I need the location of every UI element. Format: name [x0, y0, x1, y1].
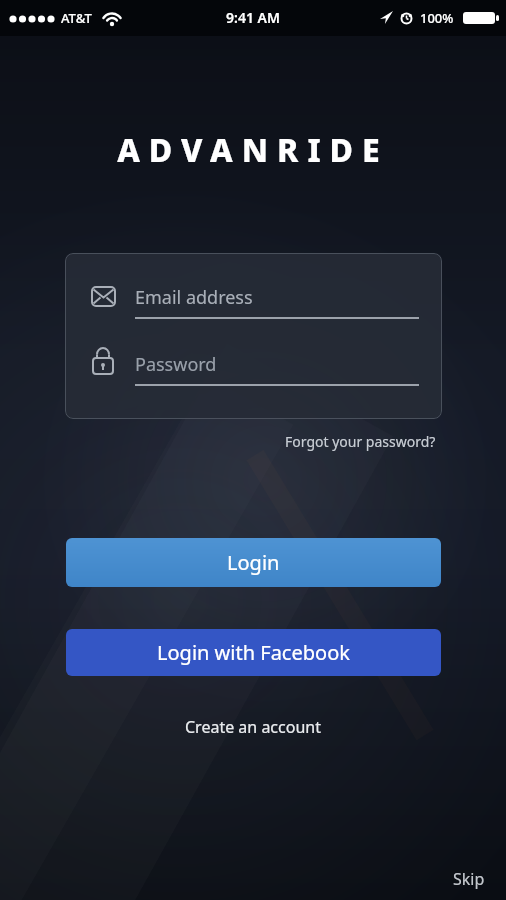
button[interactable]: Skip — [453, 868, 485, 890]
staticText: Login with Facebook — [157, 639, 350, 666]
staticText: 9:41 AM — [0, 8, 506, 27]
staticText: Email address — [135, 285, 253, 310]
staticText: ADVANRIDE — [0, 128, 506, 172]
button[interactable] — [83, 269, 424, 321]
button[interactable]: Login with Facebook — [66, 629, 441, 676]
staticText: Password — [135, 352, 217, 377]
button[interactable]: Login — [66, 538, 441, 587]
staticText: 100% — [420, 9, 454, 27]
staticText: AT&T — [61, 9, 92, 27]
button[interactable] — [83, 335, 424, 387]
button[interactable]: Forgot your password? — [285, 432, 436, 451]
staticText: Login — [227, 549, 280, 576]
button[interactable]: Create an account — [185, 716, 321, 738]
